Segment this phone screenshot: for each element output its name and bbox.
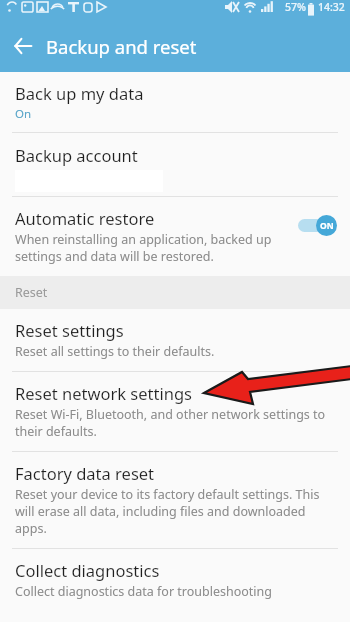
button[interactable]: Reset network settings	[0, 372, 350, 451]
staticText: Reset your device to its factory default…	[15, 486, 335, 537]
staticText: 57%	[285, 0, 306, 14]
button[interactable]: Automatic restore toggle, on	[296, 214, 340, 236]
staticText: ON	[320, 220, 334, 232]
staticText: Factory data reset	[15, 462, 155, 484]
button[interactable]: Factory data reset	[0, 452, 350, 548]
button[interactable]: Automatic restore	[0, 197, 350, 276]
button[interactable]: Backup account	[0, 133, 350, 196]
button[interactable]: Navigate up	[0, 20, 46, 72]
staticText: Reset all settings to their defaults.	[15, 343, 215, 360]
button[interactable]: Collect diagnostics	[0, 549, 350, 611]
staticText: Collect diagnostics	[15, 559, 160, 581]
staticText: 14:32	[318, 0, 345, 14]
staticText: Reset settings	[15, 319, 124, 341]
staticText: On	[15, 106, 32, 122]
staticText: Backup and reset	[46, 34, 197, 59]
staticText: When reinstalling an application, backed…	[15, 231, 290, 265]
staticText: Reset Wi-Fi, Bluetooth, and other networ…	[15, 406, 335, 440]
staticText: Backup account	[15, 144, 138, 166]
staticText: Reset network settings	[15, 382, 192, 404]
button[interactable]: Reset settings	[0, 309, 350, 371]
staticText: Automatic restore	[15, 207, 155, 229]
staticText: Back up my data	[15, 82, 144, 104]
staticText: Collect diagnostics data for troubleshoo…	[15, 583, 273, 600]
staticText: Reset	[15, 284, 48, 301]
button[interactable]: Back up my data	[0, 72, 350, 132]
